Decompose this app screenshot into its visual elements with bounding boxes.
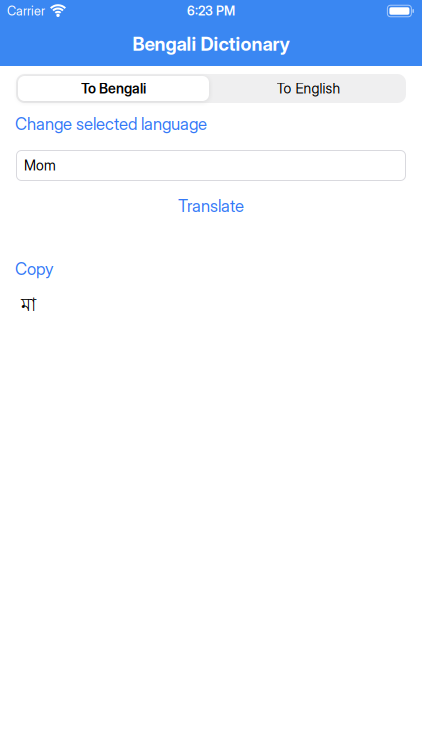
staticText: Carrier	[7, 3, 45, 19]
button[interactable]: Change selected language	[15, 114, 207, 134]
staticText: 6:23 PM	[187, 3, 235, 19]
staticText: To Bengali	[81, 80, 146, 97]
staticText: মা	[21, 293, 36, 319]
staticText: Bengali Dictionary	[132, 33, 289, 55]
staticText: Change selected language	[15, 114, 207, 134]
staticText: To English	[276, 80, 340, 97]
button[interactable]: Copy	[15, 259, 54, 279]
staticText: Copy	[15, 259, 54, 279]
button[interactable]: To English	[211, 74, 406, 103]
staticText: Mom	[24, 157, 56, 174]
staticText: Translate	[178, 196, 244, 216]
button[interactable]: Translate	[178, 196, 244, 216]
button[interactable]: To Bengali	[16, 74, 211, 103]
